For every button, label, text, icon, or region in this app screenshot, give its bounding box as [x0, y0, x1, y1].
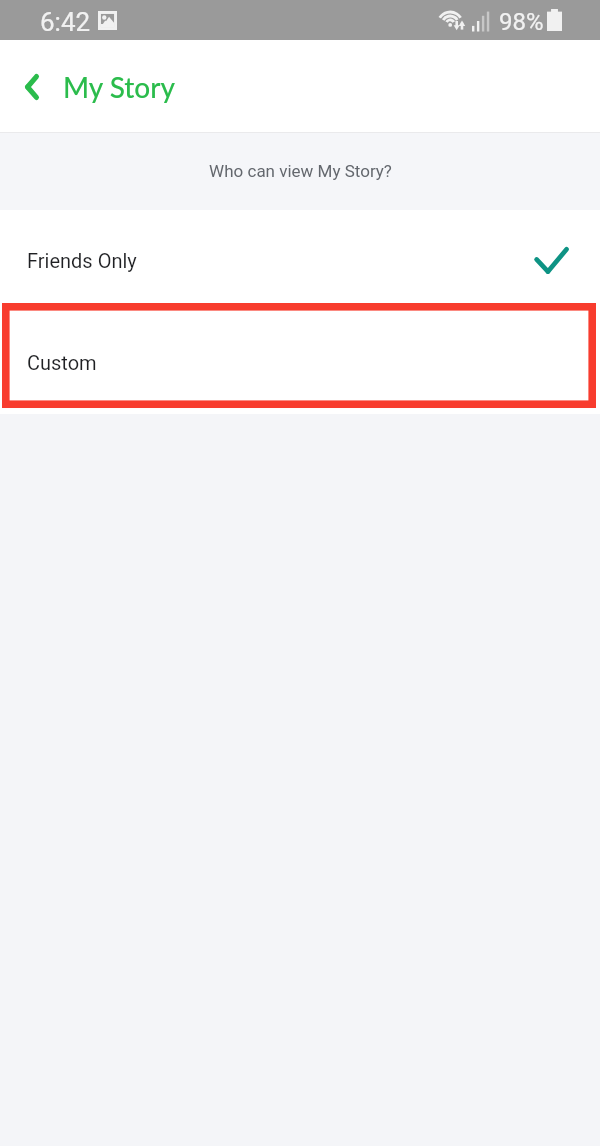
staticText: 6:42 [40, 7, 91, 37]
staticText: 98% [499, 8, 544, 36]
button[interactable]: Navigate up [10, 64, 54, 108]
staticText: My Story [63, 70, 176, 104]
staticText: Custom [27, 351, 97, 374]
button[interactable]: Custom [0, 309, 600, 414]
button[interactable]: Friends Only [0, 210, 600, 309]
staticText: Friends Only [27, 249, 137, 272]
staticText: Who can view My Story? [209, 161, 392, 181]
